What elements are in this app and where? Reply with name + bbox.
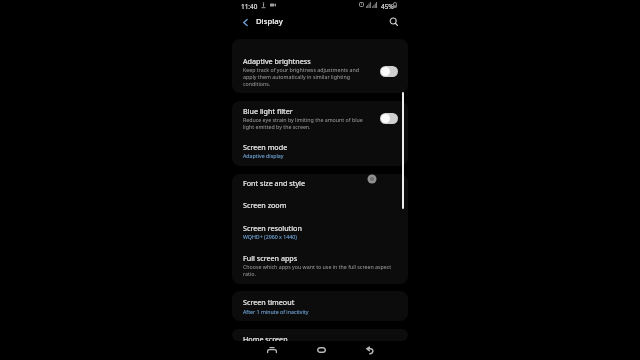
button[interactable]: Back (360, 340, 380, 360)
staticText: Screen resolution (243, 223, 302, 233)
button[interactable]: Toggle (380, 66, 398, 77)
staticText: After 1 minute of inactivity (243, 308, 309, 315)
staticText: Full screen apps (243, 253, 298, 263)
button[interactable] (232, 195, 408, 216)
button[interactable] (232, 174, 408, 195)
button[interactable]: Home (311, 340, 331, 360)
staticText: 45% (381, 2, 394, 11)
staticText: WQHD+ (2960 x 1440) (243, 233, 297, 240)
staticText: Blue light filter (243, 106, 293, 116)
button[interactable] (232, 138, 408, 166)
staticText: Adaptive brightness (243, 56, 311, 66)
button[interactable]: Home screen (232, 329, 408, 341)
staticText: Home screen (243, 334, 288, 341)
staticText: Adaptive display (243, 152, 284, 159)
staticText: Display (256, 16, 283, 26)
staticText: Choose which apps you want to use in the… (243, 263, 395, 277)
button[interactable] (232, 291, 408, 321)
button[interactable] (232, 244, 408, 284)
button[interactable] (232, 216, 408, 244)
staticText: Screen timeout (243, 297, 295, 307)
button[interactable]: Recent apps (262, 340, 282, 360)
staticText: Keep track of your brightness adjustment… (243, 66, 365, 87)
staticText: Screen mode (243, 142, 288, 152)
button[interactable]: Toggle (380, 113, 398, 124)
staticText: 11:40 (241, 2, 258, 11)
staticText: Reduce eye strain by limiting the amount… (243, 116, 365, 130)
staticText: Screen zoom (243, 200, 287, 210)
button[interactable]: Search (385, 13, 403, 31)
button[interactable] (232, 39, 408, 93)
staticText: Font size and style (243, 178, 305, 188)
button[interactable]: Navigate up (236, 13, 254, 31)
button[interactable] (232, 101, 408, 138)
